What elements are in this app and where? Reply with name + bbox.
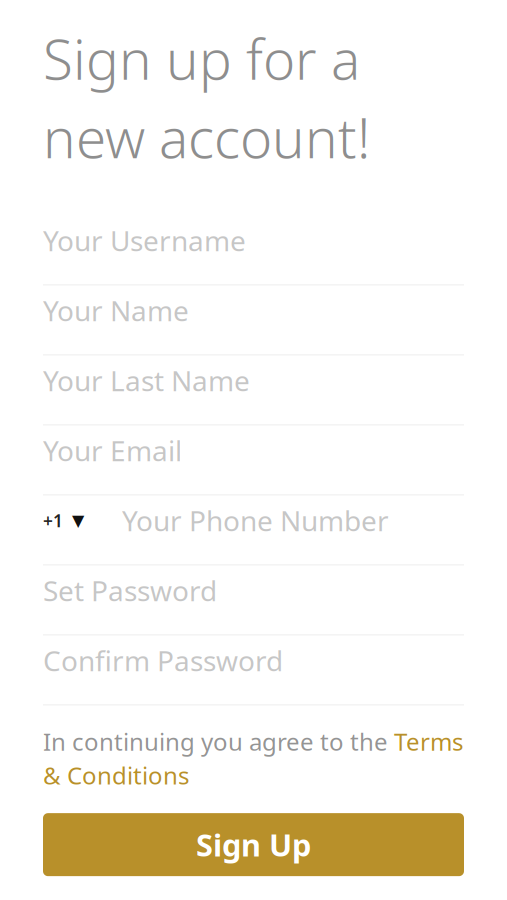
- button[interactable]: In continuing you agree to the: [0, 705, 507, 791]
- staticText: In continuing you agree to the: [43, 725, 394, 757]
- staticText: Your Email: [43, 432, 182, 469]
- staticText: Set Password: [43, 572, 217, 609]
- staticText: Your Name: [43, 292, 189, 329]
- staticText: Sign up for a: [43, 22, 360, 95]
- button[interactable]: Your Email: [0, 425, 507, 495]
- button[interactable]: Sign Up: [43, 813, 464, 876]
- staticText: & Conditions: [43, 759, 189, 791]
- staticText: Terms: [394, 725, 463, 757]
- staticText: +1: [43, 509, 63, 532]
- staticText: Your Phone Number: [122, 502, 389, 539]
- button[interactable]: Set Password: [0, 565, 507, 635]
- button[interactable]: Your Username: [0, 215, 507, 285]
- staticText: Sign Up: [196, 824, 311, 865]
- button[interactable]: +1: [0, 495, 507, 565]
- staticText: new account!: [43, 101, 370, 173]
- staticText: Confirm Password: [43, 642, 283, 679]
- staticText: Your Username: [43, 222, 246, 259]
- staticText: ▼: [72, 511, 84, 529]
- button[interactable]: Your Name: [0, 285, 507, 355]
- button[interactable]: Confirm Password: [0, 635, 507, 705]
- staticText: Your Last Name: [43, 362, 250, 399]
- button[interactable]: Your Last Name: [0, 355, 507, 425]
